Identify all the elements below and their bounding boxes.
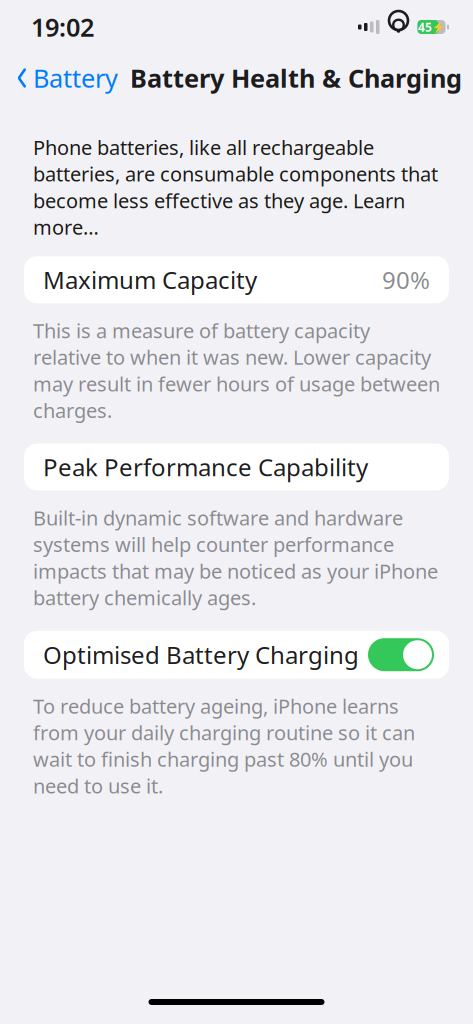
staticText: ⚡ [432, 21, 445, 33]
staticText: To reduce battery ageing, iPhone learns … [33, 693, 415, 799]
staticText: 19:02 [31, 10, 94, 44]
staticText: Battery Health & Charging [130, 61, 462, 95]
staticText: Battery [33, 61, 118, 95]
button[interactable]: Peak Performance Capability [24, 443, 449, 490]
staticText: Optimised Battery Charging [43, 639, 359, 671]
staticText: This is a measure of battery capacity re… [33, 317, 440, 423]
staticText: Maximum Capacity [43, 264, 257, 296]
button[interactable]: Maximum Capacity [24, 256, 449, 303]
staticText: Peak Performance Capability [43, 451, 368, 483]
button[interactable]: Battery [0, 55, 118, 101]
staticText: 45 [418, 19, 432, 35]
button[interactable]: Optimised Battery Charging [24, 631, 449, 679]
staticText: Phone batteries, like all rechargeable b… [33, 134, 438, 240]
staticText: Built-in dynamic software and hardware s… [33, 504, 438, 611]
staticText: 90% [382, 264, 430, 296]
